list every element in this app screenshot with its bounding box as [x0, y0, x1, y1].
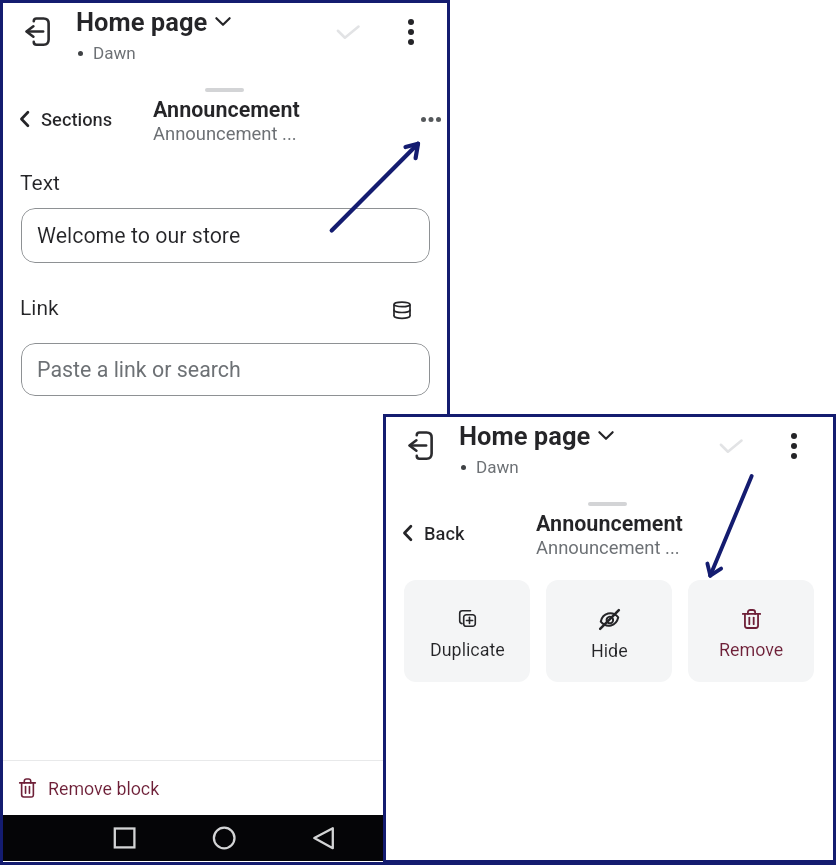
button[interactable]: Paste a link or search	[21, 343, 430, 396]
staticText: Text	[20, 171, 60, 196]
staticText: Back	[424, 523, 465, 544]
staticText: Hide	[591, 640, 628, 661]
staticText: Paste a link or search	[37, 357, 241, 382]
staticText: Dawn	[476, 457, 519, 477]
button[interactable]: Exit	[408, 431, 433, 460]
staticText: Announcement	[536, 511, 683, 536]
staticText: Remove block	[48, 778, 160, 799]
button[interactable]: Remove block	[3, 761, 447, 815]
button[interactable]: Back	[403, 520, 465, 546]
staticText: Home page	[76, 7, 208, 37]
button[interactable]: Hide	[546, 580, 672, 682]
button[interactable]: More options	[408, 19, 414, 45]
button[interactable]: Save	[337, 26, 359, 40]
button[interactable]: Sections	[20, 106, 113, 132]
staticText: Sections	[41, 109, 113, 130]
staticText: Announcement ...	[536, 537, 680, 559]
button[interactable]: Block options	[421, 117, 441, 122]
staticText: Link	[20, 296, 59, 321]
button[interactable]: Exit	[25, 17, 50, 46]
staticText: Announcement	[153, 97, 300, 122]
button[interactable]: Duplicate	[404, 580, 530, 682]
staticText: Home page	[459, 421, 591, 451]
button[interactable]: Remove	[688, 580, 814, 682]
staticText: Remove	[719, 639, 784, 660]
staticText: Welcome to our store	[37, 223, 241, 248]
button[interactable]: Save	[720, 440, 742, 454]
button[interactable]: More options	[791, 433, 797, 459]
button[interactable]: Select resource	[392, 300, 412, 320]
staticText: Announcement ...	[153, 123, 297, 145]
button[interactable]: Welcome to our store	[21, 208, 430, 263]
staticText: Duplicate	[430, 639, 505, 660]
staticText: Dawn	[93, 43, 136, 63]
